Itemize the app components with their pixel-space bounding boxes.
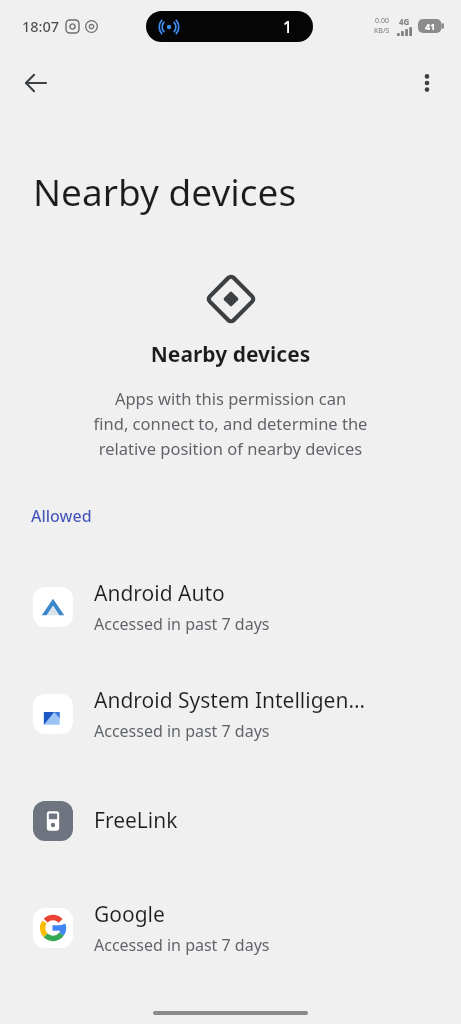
- staticText: 4G: [399, 16, 410, 27]
- staticText: 18:07: [22, 16, 60, 36]
- staticText: Allowed: [31, 505, 92, 527]
- staticText: KB/S: [374, 26, 390, 36]
- staticText: 0.00: [375, 16, 389, 26]
- staticText: FreeLink: [94, 806, 178, 835]
- staticText: Google: [94, 900, 165, 929]
- staticText: Android Auto: [94, 579, 225, 608]
- button[interactable]: Android System Intelligen…: [0, 660, 461, 767]
- staticText: Accessed in past 7 days: [94, 613, 270, 635]
- button[interactable]: Android Auto: [0, 553, 461, 660]
- button[interactable]: Google: [0, 874, 461, 981]
- staticText: Nearby devices: [0, 340, 461, 369]
- staticText: Android System Intelligen…: [94, 686, 366, 715]
- staticText: Apps with this permission can find, conn…: [30, 387, 431, 459]
- staticText: Nearby devices: [33, 166, 297, 216]
- button[interactable]: Back: [12, 59, 60, 107]
- staticText: 41: [425, 20, 436, 32]
- button[interactable]: More options: [403, 59, 451, 107]
- staticText: 1: [283, 16, 293, 38]
- staticText: Accessed in past 7 days: [94, 934, 270, 956]
- staticText: Accessed in past 7 days: [94, 720, 270, 742]
- button[interactable]: FreeLink: [0, 767, 461, 874]
